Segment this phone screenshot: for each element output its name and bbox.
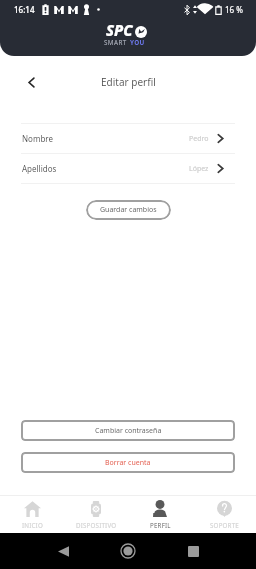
staticText: SOPORTE (210, 521, 239, 529)
button[interactable]: Apellidos (0, 154, 256, 183)
staticText: Nombre (22, 133, 53, 144)
staticText: López (189, 164, 209, 174)
button[interactable]: INICIO (0, 496, 64, 533)
button[interactable]: PERFIL (128, 496, 192, 533)
button[interactable]: SOPORTE (192, 496, 256, 533)
button[interactable]: Back (20, 71, 42, 93)
staticText: PERFIL (150, 521, 171, 529)
staticText: Guardar cambios (100, 205, 157, 215)
button[interactable]: Recents (183, 541, 203, 561)
staticText: SMART (104, 38, 127, 47)
button[interactable]: Guardar cambios (86, 200, 171, 220)
button[interactable]: Nombre (0, 124, 256, 153)
staticText: Editar perfil (101, 75, 156, 89)
staticText: 16:14 (14, 4, 35, 15)
staticText: 16 % (225, 4, 243, 15)
button[interactable]: Home (118, 541, 138, 561)
staticText: YOU (130, 38, 145, 47)
staticText: DISPOSITIVO (76, 521, 117, 529)
button[interactable]: Borrar cuenta (21, 452, 235, 473)
button[interactable]: Back (53, 541, 73, 561)
staticText: Borrar cuenta (105, 458, 151, 468)
staticText: SPC (106, 20, 133, 40)
staticText: Apellidos (22, 163, 57, 174)
button[interactable]: DISPOSITIVO (64, 496, 128, 533)
staticText: Cambiar contraseña (95, 426, 162, 436)
staticText: INICIO (22, 521, 43, 529)
button[interactable]: Cambiar contraseña (21, 420, 235, 441)
staticText: Pedro (189, 134, 209, 144)
